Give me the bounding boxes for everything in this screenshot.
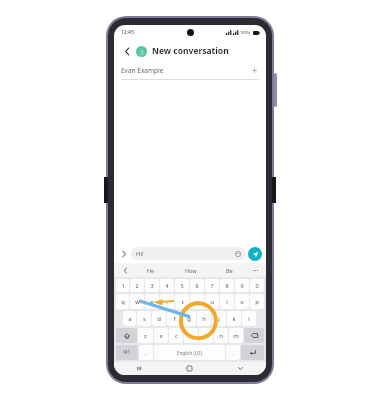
- staticText: Evan Example: [121, 66, 164, 75]
- staticText: 5: [180, 282, 184, 289]
- staticText: 0: [255, 282, 259, 289]
- button[interactable]: ,: [139, 345, 153, 360]
- button[interactable]: .: [226, 345, 240, 360]
- button[interactable]: Expand: [118, 248, 129, 259]
- staticText: t: [181, 298, 184, 306]
- staticText: u: [210, 298, 214, 306]
- button[interactable]: Be: [210, 263, 249, 277]
- staticText: 7: [210, 282, 214, 289]
- button[interactable]: k: [227, 311, 241, 326]
- staticText: k: [232, 315, 236, 323]
- staticText: 9: [240, 282, 244, 289]
- staticText: c: [175, 332, 178, 340]
- button[interactable]: b: [199, 328, 213, 343]
- button[interactable]: Symbols: [116, 345, 138, 360]
- staticText: 100%: [240, 30, 251, 35]
- staticText: g: [187, 315, 191, 323]
- button[interactable]: 8: [220, 279, 234, 292]
- button[interactable]: p: [250, 294, 264, 309]
- staticText: Hi!: [136, 250, 144, 258]
- button[interactable]: c: [169, 328, 183, 343]
- button[interactable]: English (US): [154, 345, 225, 360]
- button[interactable]: 2: [130, 279, 144, 292]
- button[interactable]: Backspace: [244, 328, 264, 343]
- button[interactable]: Hi!: [131, 247, 246, 260]
- button[interactable]: d: [152, 311, 166, 326]
- staticText: 12:45: [121, 29, 134, 36]
- staticText: i: [226, 298, 228, 306]
- staticText: b: [204, 332, 208, 340]
- button[interactable]: Send: [248, 247, 262, 261]
- staticText: 8: [225, 282, 229, 289]
- button[interactable]: Evan Example: [121, 62, 259, 79]
- button[interactable]: Recents: [114, 362, 164, 375]
- button[interactable]: o: [235, 294, 249, 309]
- button[interactable]: 1: [116, 279, 129, 292]
- button[interactable]: 7: [205, 279, 219, 292]
- button[interactable]: u: [205, 294, 219, 309]
- staticText: j: [218, 315, 220, 323]
- button[interactable]: 0: [250, 279, 264, 292]
- button[interactable]: e: [145, 294, 159, 309]
- staticText: Be: [226, 267, 233, 274]
- button[interactable]: Back: [215, 362, 266, 375]
- button[interactable]: 6: [190, 279, 204, 292]
- staticText: l: [248, 315, 250, 323]
- staticText: 6: [195, 282, 199, 289]
- button[interactable]: Back: [121, 45, 134, 58]
- staticText: m: [233, 332, 239, 340]
- staticText: d: [157, 315, 161, 323]
- button[interactable]: q: [116, 294, 129, 309]
- other: Add recipient: [250, 66, 259, 75]
- button[interactable]: z: [138, 328, 153, 343]
- staticText: 2: [135, 282, 139, 289]
- button[interactable]: Shift: [116, 328, 137, 343]
- staticText: New conversation: [152, 45, 229, 57]
- button[interactable]: He: [131, 263, 171, 277]
- staticText: e: [150, 298, 154, 306]
- staticText: !#1: [123, 349, 131, 356]
- button[interactable]: y: [190, 294, 204, 309]
- button[interactable]: i: [220, 294, 234, 309]
- staticText: x: [159, 332, 163, 340]
- button[interactable]: How: [171, 263, 210, 277]
- staticText: h: [202, 315, 206, 323]
- button[interactable]: l: [242, 311, 256, 326]
- button[interactable]: 5: [175, 279, 189, 292]
- staticText: y: [195, 298, 199, 306]
- staticText: a: [128, 315, 132, 323]
- staticText: s: [143, 315, 146, 323]
- staticText: How: [185, 267, 197, 274]
- staticText: English (US): [177, 350, 202, 356]
- button[interactable]: 4: [160, 279, 174, 292]
- staticText: 4: [165, 282, 169, 289]
- button[interactable]: More suggestions: [249, 263, 261, 277]
- button[interactable]: Home: [164, 362, 215, 375]
- staticText: o: [240, 298, 244, 306]
- button[interactable]: s: [137, 311, 151, 326]
- button[interactable]: a: [123, 311, 136, 326]
- button[interactable]: Previous: [119, 263, 131, 277]
- button[interactable]: x: [154, 328, 168, 343]
- button[interactable]: w: [130, 294, 144, 309]
- button[interactable]: v: [184, 328, 198, 343]
- button[interactable]: t: [175, 294, 189, 309]
- button[interactable]: m: [229, 328, 243, 343]
- staticText: 3: [150, 282, 154, 289]
- staticText: q: [121, 298, 125, 306]
- button[interactable]: g: [182, 311, 196, 326]
- staticText: f: [173, 315, 176, 323]
- button[interactable]: r: [160, 294, 174, 309]
- staticText: r: [166, 298, 169, 306]
- staticText: p: [255, 298, 259, 306]
- staticText: z: [144, 332, 147, 340]
- button[interactable]: f: [167, 311, 181, 326]
- button[interactable]: j: [212, 311, 226, 326]
- button[interactable]: 9: [235, 279, 249, 292]
- staticText: .: [232, 349, 234, 356]
- button[interactable]: h: [197, 311, 211, 326]
- button[interactable]: Enter: [241, 345, 264, 360]
- button[interactable]: n: [214, 328, 228, 343]
- button[interactable]: 3: [145, 279, 159, 292]
- staticText: w: [135, 298, 140, 306]
